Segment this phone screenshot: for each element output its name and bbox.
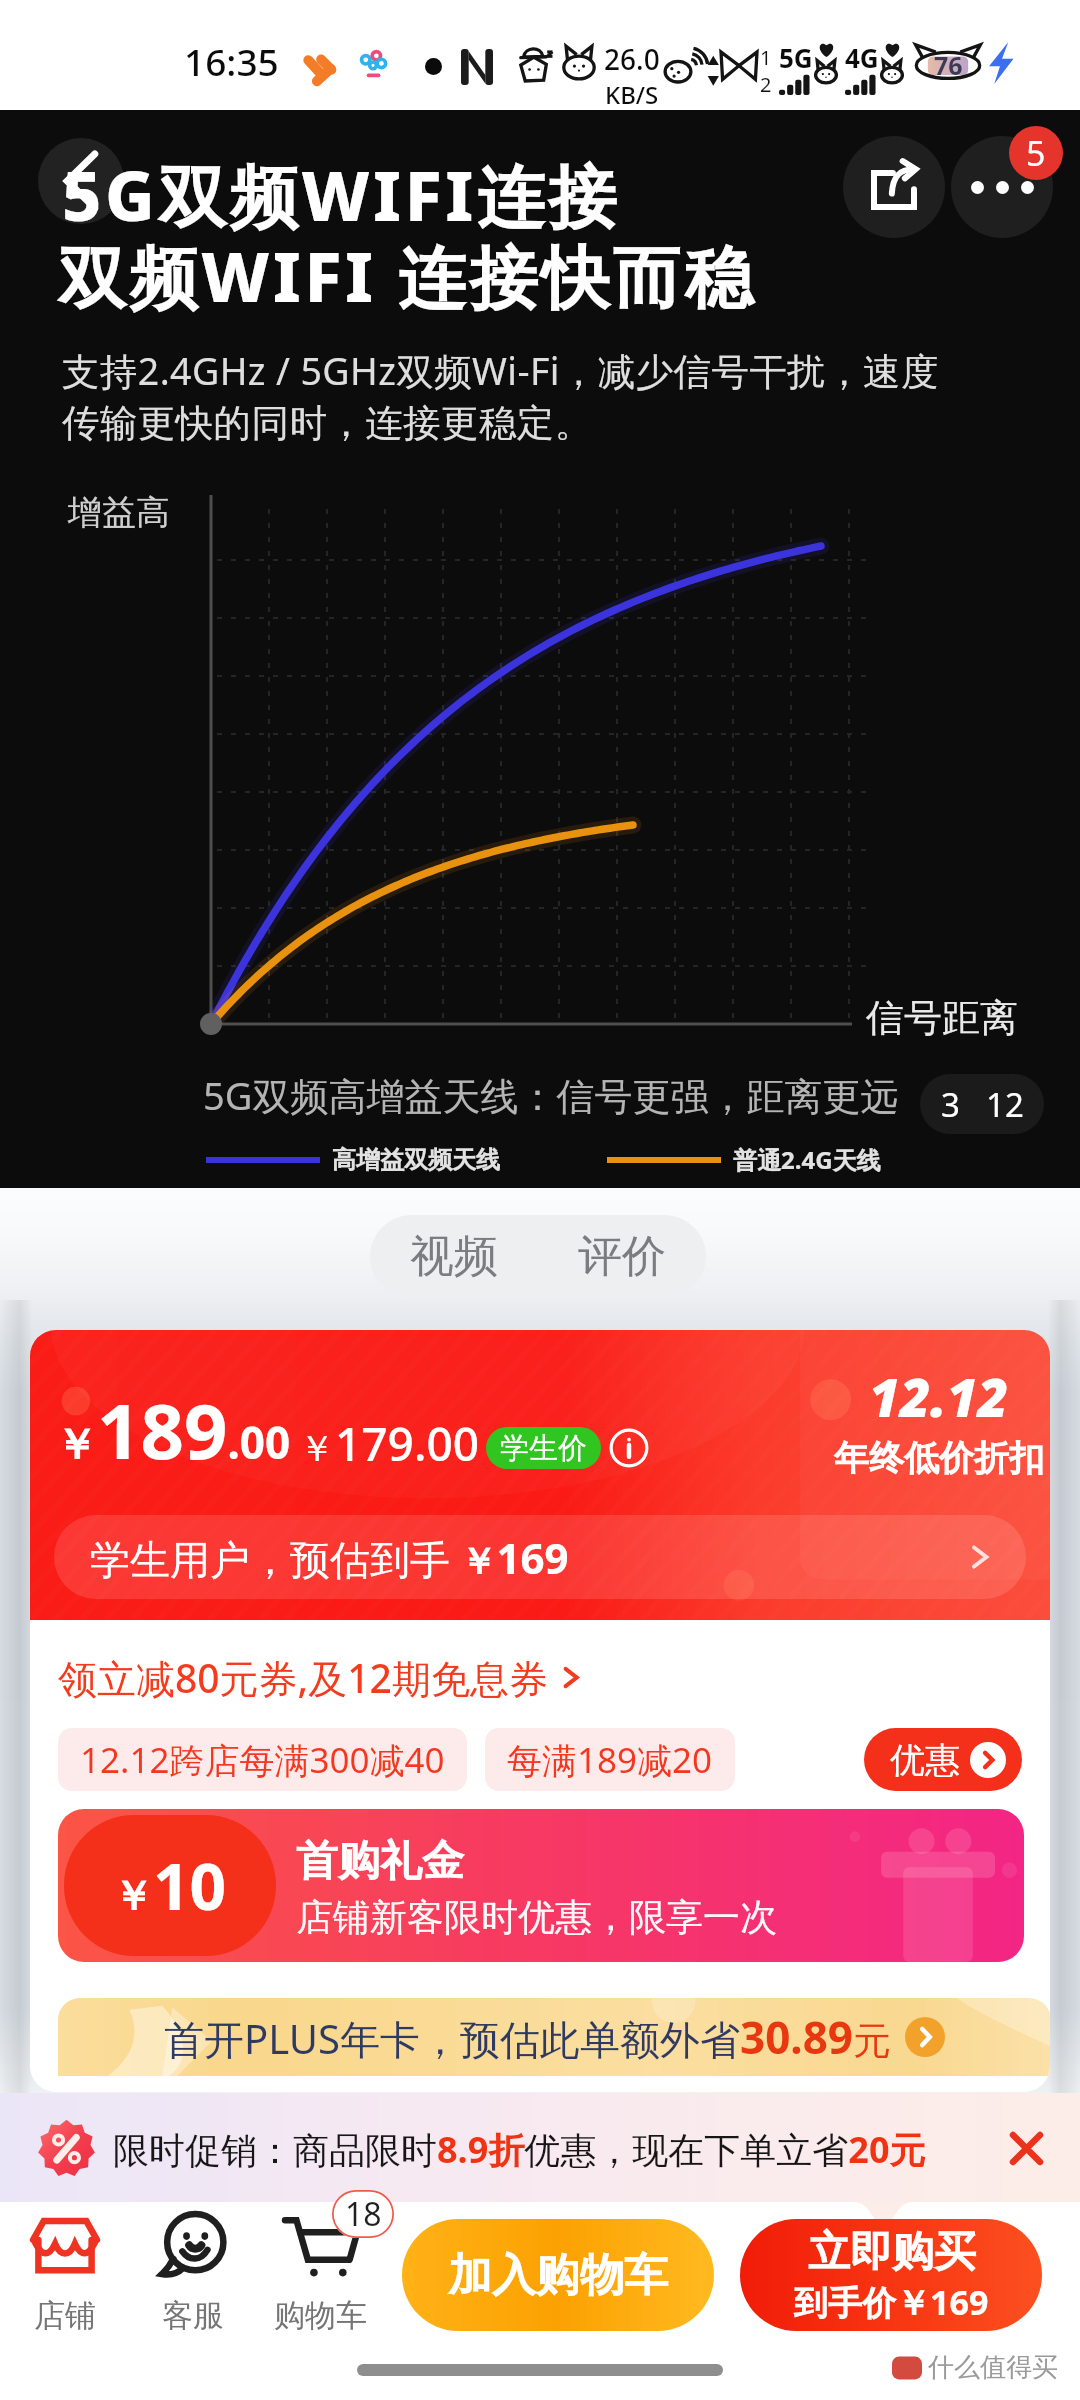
staticText: 购物车 bbox=[274, 2296, 367, 2335]
staticText: 2 bbox=[760, 71, 772, 98]
staticText: 信号距离 bbox=[866, 994, 1018, 1042]
staticText: ￥179.00 bbox=[299, 1412, 480, 1475]
staticText: 优惠 bbox=[890, 1738, 960, 1782]
staticText: 增益高 bbox=[68, 491, 170, 534]
staticText: 加入购物车 bbox=[448, 2248, 668, 2303]
staticText: 立即购买 bbox=[808, 2226, 976, 2279]
staticText: 评价 bbox=[578, 1229, 666, 1284]
button[interactable]: 学生价 bbox=[486, 1427, 601, 1469]
button[interactable]: Back bbox=[38, 138, 124, 224]
staticText: 5G双频WIFI连接 bbox=[62, 148, 621, 241]
staticText: 双频WIFI 连接快而稳 bbox=[58, 229, 757, 322]
button[interactable]: Share bbox=[843, 136, 945, 238]
staticText: 学生用户，预估到手 ￥169 bbox=[90, 1529, 569, 1586]
staticText: 26.0 bbox=[604, 40, 660, 78]
staticText: 12.12跨店每满300减40 bbox=[80, 1736, 445, 1784]
staticText: 每满189减20 bbox=[507, 1736, 713, 1784]
button[interactable]: ￥10 bbox=[58, 1809, 1024, 1962]
button[interactable]: 12.12跨店每满300减40 bbox=[58, 1728, 467, 1791]
button[interactable]: Price info bbox=[609, 1428, 649, 1468]
staticText: 12.12 bbox=[869, 1360, 1009, 1432]
button[interactable]: 视频 bbox=[370, 1215, 538, 1298]
staticText: 5 bbox=[1026, 130, 1046, 176]
staticText: 学生价 bbox=[500, 1430, 587, 1467]
staticText: 16:35 bbox=[184, 36, 279, 86]
button[interactable]: 评价 bbox=[538, 1215, 706, 1298]
staticText: 店铺新客限时优惠，限享一次 bbox=[296, 1894, 777, 1941]
staticText: 店铺 bbox=[34, 2296, 96, 2335]
staticText: ￥189.00 bbox=[55, 1378, 291, 1482]
staticText: 76 bbox=[934, 48, 963, 82]
button[interactable]: 加入购物车 bbox=[402, 2219, 714, 2331]
staticText: 1 bbox=[760, 44, 772, 71]
button[interactable]: 首开PLUS年卡，预估此单额外省30.89元 bbox=[58, 1998, 1050, 2076]
staticText: 12 bbox=[986, 1082, 1024, 1127]
staticText: 到手价￥169 bbox=[794, 2279, 989, 2325]
button[interactable]: More options bbox=[951, 136, 1053, 238]
button[interactable]: Close promotion bbox=[994, 2116, 1058, 2180]
button[interactable]: 立即购买 bbox=[740, 2219, 1042, 2331]
staticText: 5G bbox=[779, 40, 813, 75]
staticText: 年终低价折扣 bbox=[834, 1436, 1044, 1480]
button[interactable]: 客服 bbox=[129, 2208, 257, 2335]
staticText: 限时促销：商品限时8.9折优惠，现在下单立省20元 bbox=[113, 2125, 926, 2174]
staticText: 3 bbox=[941, 1082, 960, 1127]
button[interactable]: 店铺 bbox=[1, 2208, 129, 2335]
staticText: 高增益双频天线 bbox=[332, 1145, 500, 1175]
button[interactable]: 每满189减20 bbox=[485, 1728, 735, 1791]
button[interactable]: 领立减80元券,及12期免息券 bbox=[58, 1651, 580, 1704]
staticText: 传输更快的同时，连接更稳定。 bbox=[62, 400, 593, 447]
button[interactable]: 优惠 bbox=[864, 1728, 1022, 1791]
staticText: 视频 bbox=[410, 1229, 498, 1284]
staticText: 什么值得买 bbox=[928, 2351, 1058, 2384]
staticText: ￥10 bbox=[113, 1842, 227, 1929]
staticText: 首开PLUS年卡，预估此单额外省30.89元 bbox=[164, 2007, 891, 2067]
staticText: 4G bbox=[845, 40, 879, 75]
button[interactable]: 18 bbox=[256, 2208, 384, 2335]
staticText: 支持2.4GHz / 5GHz双频Wi-Fi，减少信号干扰，速度 bbox=[62, 345, 939, 396]
button[interactable]: 3 bbox=[920, 1074, 1044, 1134]
staticText: 5G双频高增益天线：信号更强，距离更远 bbox=[203, 1069, 899, 1121]
staticText: 领立减80元券,及12期免息券 bbox=[58, 1651, 548, 1704]
staticText: KB/S bbox=[605, 78, 659, 111]
staticText: 客服 bbox=[162, 2296, 224, 2335]
staticText: 普通2.4G天线 bbox=[733, 1143, 881, 1176]
staticText: 首购礼金 bbox=[296, 1835, 464, 1888]
button[interactable]: 学生用户，预估到手 ￥169 bbox=[54, 1515, 1026, 1599]
staticText: 18 bbox=[345, 2192, 382, 2236]
